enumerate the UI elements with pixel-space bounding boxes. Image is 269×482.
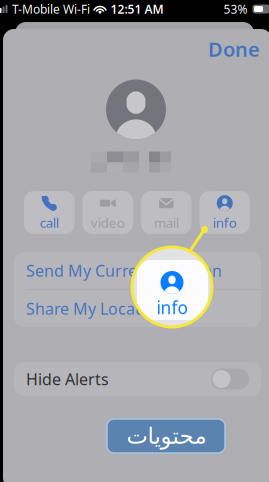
button[interactable]: info [199,191,250,234]
button[interactable]: mail [141,191,191,234]
staticText: video [91,214,125,231]
button[interactable]: call [24,191,74,234]
staticText: T-Mobile Wi-Fi [12,1,90,17]
staticText: Share My Location [26,298,165,319]
staticText: info [213,214,237,231]
button[interactable]: Hide Alerts [14,362,261,396]
staticText: محتويات [126,423,206,449]
staticText: Hide Alerts [26,368,109,390]
staticText: info [156,296,187,319]
staticText: mail [154,214,179,231]
staticText: call [40,214,59,231]
button[interactable]: video [82,191,133,234]
staticText: 53% [223,1,247,17]
staticText: Send My Current Location [26,260,222,281]
button[interactable]: Send My Current Location [14,252,261,289]
staticText: Done [208,36,260,62]
staticText: 12:51 AM [110,1,163,17]
button[interactable]: Done [207,35,261,63]
button[interactable]: Share My Location [14,290,261,327]
